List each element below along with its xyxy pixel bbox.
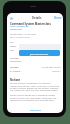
staticText: Jetzt teilnehmen xyxy=(30,52,49,55)
staticText: 0 / Woche xyxy=(10,70,21,73)
staticText: Minuten xyxy=(10,66,19,69)
staticText: Share xyxy=(54,16,62,20)
button[interactable]: Jetzt teilnehmen xyxy=(19,50,60,56)
staticText: Teilnehmer xyxy=(10,60,22,63)
staticText: Dieser Termin wurde von Command System e… xyxy=(10,94,61,102)
staticText: meetingxx xyxy=(30,109,41,112)
button[interactable]: https://cmdsys.de/ masterclass xyxy=(10,25,30,31)
staticText: Link xyxy=(10,49,15,52)
button[interactable]: Back xyxy=(10,17,13,20)
staticText: Ort xyxy=(10,41,14,44)
staticText: Notizen xyxy=(10,78,21,82)
staticText: Details xyxy=(32,16,42,20)
staticText: Command System Masterclass xyxy=(10,22,51,26)
staticText: https://cmdsys.de/ masterclass xyxy=(10,25,30,31)
staticText: Donnerstag, 16 Nov 2023 von 17:00 bis 18… xyxy=(10,33,37,39)
staticText: Woche 1 xyxy=(52,70,61,73)
staticText: Dauer xyxy=(10,45,17,48)
button[interactable]: Share xyxy=(54,16,62,20)
staticText: 30 Minuten online xyxy=(42,66,61,69)
staticText: Du bist herzlich eingeladen zu unserem M… xyxy=(10,82,61,92)
button[interactable]: meetingxx xyxy=(10,109,61,112)
staticText: Kalender xyxy=(10,57,20,60)
button[interactable]: Details xyxy=(32,16,42,20)
